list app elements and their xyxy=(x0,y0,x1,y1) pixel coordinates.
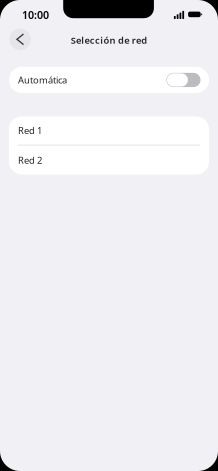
button[interactable]: Red 2 xyxy=(9,145,209,175)
button[interactable]: Red 1 xyxy=(9,116,209,145)
button[interactable]: Automática xyxy=(9,67,209,93)
staticText: Red 2 xyxy=(18,154,42,166)
staticText: Automática xyxy=(18,74,67,86)
staticText: Red 1 xyxy=(18,124,42,137)
button[interactable]: Back xyxy=(6,25,34,53)
staticText: Selección de red xyxy=(71,34,147,46)
staticText: 10:00 xyxy=(22,8,49,22)
